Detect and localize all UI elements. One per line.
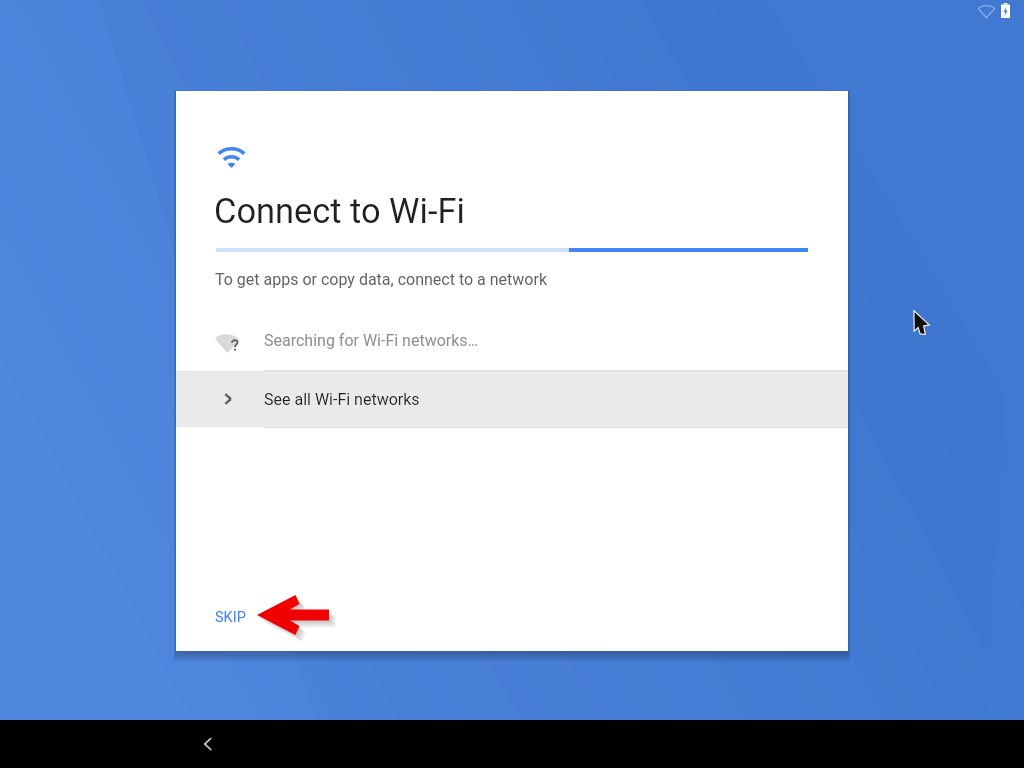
button[interactable]: Back	[179, 720, 235, 768]
button[interactable]: See all Wi-Fi networks	[176, 371, 848, 427]
staticText: SKIP	[215, 609, 246, 626]
staticText: To get apps or copy data, connect to a n…	[215, 270, 547, 289]
staticText: See all Wi-Fi networks	[264, 390, 420, 409]
button[interactable]: SKIP	[199, 599, 262, 635]
staticText: Searching for Wi-Fi networks…	[264, 331, 479, 350]
button[interactable]: Searching for Wi-Fi networks…	[176, 312, 848, 368]
staticText: Connect to Wi-Fi	[214, 191, 465, 231]
